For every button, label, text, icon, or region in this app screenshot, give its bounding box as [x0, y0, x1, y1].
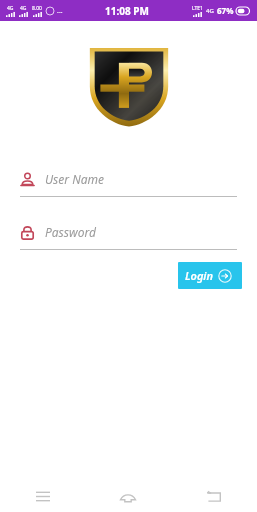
staticText: 4G	[7, 5, 14, 12]
staticText: User Name	[45, 171, 104, 187]
staticText: Login	[185, 268, 214, 283]
staticText: 4G	[20, 5, 27, 12]
button[interactable]: Recents	[0, 480, 85, 512]
staticText: LTE1	[192, 5, 203, 12]
button[interactable]: Back	[171, 480, 257, 512]
staticText: 11:08 PM	[105, 4, 149, 18]
staticText: ...	[57, 6, 63, 16]
staticText: Password	[45, 224, 96, 240]
staticText: 67%	[217, 5, 234, 16]
button[interactable]: Login	[178, 262, 242, 289]
button[interactable]: Home	[85, 480, 171, 512]
staticText: 8.00	[32, 5, 42, 12]
staticText: 4G	[206, 7, 214, 15]
